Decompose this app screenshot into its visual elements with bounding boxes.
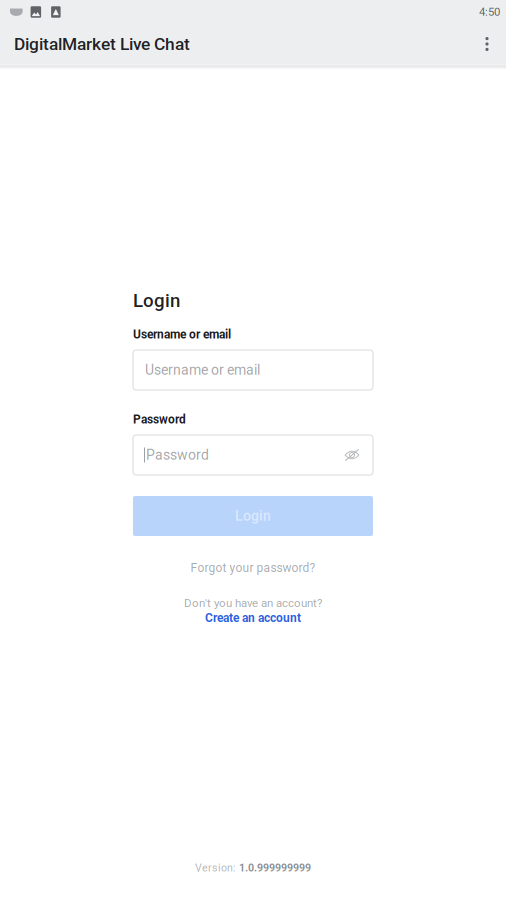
staticText: Create an account [205,611,301,625]
button[interactable]: Login [133,496,373,536]
staticText: Password [133,412,186,427]
staticText: Username or email [145,362,260,378]
button[interactable]: Forgot your password? [133,561,373,575]
button[interactable]: Create an account [133,612,373,624]
staticText: Password [146,447,209,463]
staticText: Don't you have an account? [184,596,322,610]
staticText: Login [133,290,180,311]
button[interactable]: More options [472,24,502,64]
staticText: 4:50 [479,5,500,19]
staticText: Version: [195,861,236,874]
staticText: Forgot your password? [190,561,315,575]
staticText: Login [235,508,271,524]
staticText: 1.0.999999999 [239,861,311,874]
button[interactable]: Show password [344,448,360,462]
staticText: DigitalMarket Live Chat [14,34,190,54]
staticText: Username or email [133,327,231,342]
